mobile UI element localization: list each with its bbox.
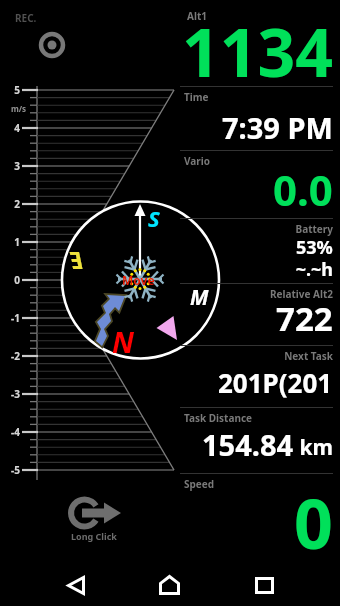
staticText: 201P(201: [218, 365, 333, 400]
button[interactable]: Relative Alt2: [180, 283, 333, 345]
staticText: Long Click: [71, 530, 117, 542]
staticText: 53%: [296, 235, 333, 260]
staticText: -4: [2, 425, 20, 439]
staticText: Time: [184, 90, 333, 104]
button[interactable]: Next Task: [180, 345, 333, 407]
staticText: S: [148, 203, 160, 233]
button[interactable]: Speed: [180, 473, 333, 562]
staticText: 0: [294, 476, 333, 565]
staticText: -5: [2, 463, 20, 477]
staticText: E: [70, 244, 83, 275]
staticText: -2: [2, 349, 20, 363]
staticText: ~.~h: [180, 257, 333, 282]
staticText: Relative Alt2: [184, 287, 333, 301]
staticText: Next Task: [184, 349, 333, 363]
staticText: REC.: [15, 11, 37, 25]
button[interactable]: Alt1: [180, 0, 333, 86]
button[interactable]: Recents: [241, 563, 288, 606]
button[interactable]: Record: [12, 6, 92, 64]
staticText: 1: [2, 235, 20, 249]
staticText: 0.0: [273, 161, 333, 218]
staticText: Move: [122, 272, 155, 288]
staticText: 7:39 PM: [222, 108, 333, 147]
button[interactable]: Home: [146, 563, 193, 606]
staticText: 2: [2, 197, 20, 211]
staticText: N: [112, 322, 134, 361]
staticText: km: [294, 433, 333, 462]
button[interactable]: Time: [180, 86, 333, 150]
button[interactable]: Back: [52, 563, 99, 606]
button[interactable]: Battery: [180, 218, 333, 283]
staticText: -3: [2, 387, 20, 401]
staticText: 5: [2, 83, 20, 97]
staticText: Battery: [184, 222, 333, 236]
staticText: 4: [2, 121, 20, 135]
staticText: Speed: [184, 477, 333, 491]
staticText: m/s: [11, 103, 27, 114]
button[interactable]: Task Distance: [180, 407, 333, 473]
staticText: M: [190, 283, 209, 312]
staticText: 0: [2, 273, 20, 287]
staticText: 3: [2, 159, 20, 173]
staticText: Vario: [184, 154, 333, 168]
staticText: 722: [276, 296, 333, 341]
staticText: Alt1: [187, 9, 207, 23]
staticText: 154.84: [202, 425, 294, 464]
button[interactable]: Vario: [180, 150, 333, 218]
button[interactable]: Exit: [58, 488, 138, 550]
staticText: -1: [2, 311, 20, 325]
staticText: Task Distance: [184, 411, 333, 425]
staticText: 1134: [180, 6, 333, 92]
